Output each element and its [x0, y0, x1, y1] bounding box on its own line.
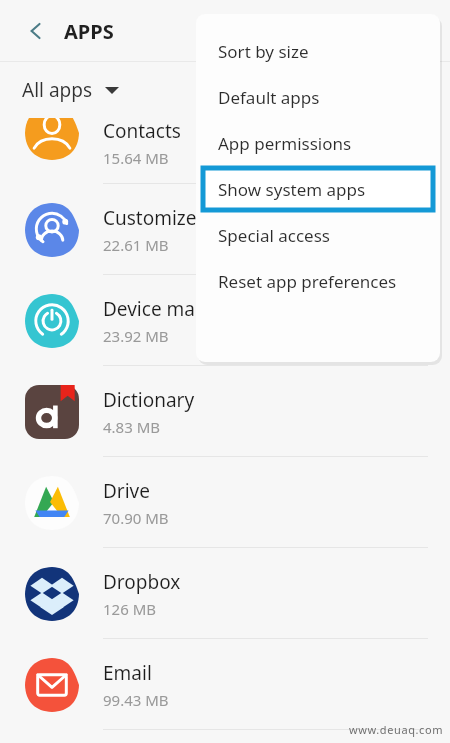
staticText: Reset app preferences [218, 270, 397, 293]
button[interactable]: Email [0, 639, 450, 730]
staticText: 22.61 MB [103, 235, 169, 255]
staticText: 15.64 MB [103, 148, 169, 168]
staticText: www.deuaq.com [349, 722, 444, 737]
staticText: 4.83 MB [103, 417, 161, 437]
button[interactable]: Dropbox [0, 548, 450, 639]
button[interactable]: Default apps [196, 74, 440, 120]
staticText: Customize Service [103, 205, 265, 231]
button[interactable]: Special access [196, 212, 440, 258]
staticText: All apps [22, 77, 93, 103]
staticText: Default apps [218, 86, 320, 109]
button[interactable]: Dictionary [0, 366, 450, 457]
staticText: 99.43 MB [103, 690, 169, 710]
staticText: APPS [64, 18, 114, 45]
staticText: Device maintenance [103, 296, 284, 322]
staticText: 70.90 MB [103, 508, 169, 528]
button[interactable]: Sort by size [196, 28, 440, 74]
staticText: Show system apps [218, 178, 366, 201]
button[interactable]: Reset app preferences [196, 258, 440, 304]
staticText: Dictionary [103, 387, 195, 413]
staticText: Special access [218, 224, 330, 247]
staticText: App permissions [218, 132, 352, 155]
staticText: Drive [103, 478, 150, 504]
button[interactable]: App permissions [196, 120, 440, 166]
staticText: Contacts [103, 118, 181, 144]
staticText: 23.92 MB [103, 326, 169, 346]
button[interactable]: Drive [0, 457, 450, 548]
staticText: 126 MB [103, 599, 156, 619]
staticText: Email [103, 660, 152, 686]
staticText: Sort by size [218, 40, 309, 63]
button[interactable]: All apps [22, 77, 119, 103]
button[interactable]: Customize Service [0, 184, 450, 275]
button[interactable]: Back [14, 9, 58, 53]
staticText: Dropbox [103, 569, 181, 595]
button[interactable]: Device maintenance [0, 275, 450, 366]
button[interactable]: Show system apps [196, 166, 440, 212]
